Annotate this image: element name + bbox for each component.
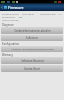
button[interactable]: Software-Neustart [1,57,63,64]
staticText: Geräteinformationen abrufen [14,29,51,33]
staticText: Software-Neustart [21,59,44,63]
staticText: Geräte-Reset [24,67,40,71]
button[interactable]: Selbsttest [1,35,63,41]
staticText: AX12-0042 [22,12,34,15]
staticText: Seriennummer [2,12,19,15]
staticText: Hardware-Rev. [40,12,57,15]
button[interactable]: Netzwerk- und Verbindungseinstellungen [1,46,63,52]
staticText: Wartung [2,53,13,57]
staticText: Netzwerk- und Verbindungseinstellungen [11,48,54,51]
button[interactable]: Navigate up [0,3,8,11]
staticText: 1.4 [58,12,62,15]
staticText: Betriebszeit [2,15,16,18]
staticText: Konfiguration [2,42,20,46]
button[interactable]: Geräteinformationen abrufen [1,27,63,34]
staticText: Letzte Prüfung [2,18,19,21]
staticText: OK [19,15,23,18]
button[interactable]: Geräte-Reset [1,65,63,72]
staticText: Selbsttest [26,36,38,40]
staticText: Firmware [8,5,24,10]
staticText: Diagnose [2,23,14,27]
